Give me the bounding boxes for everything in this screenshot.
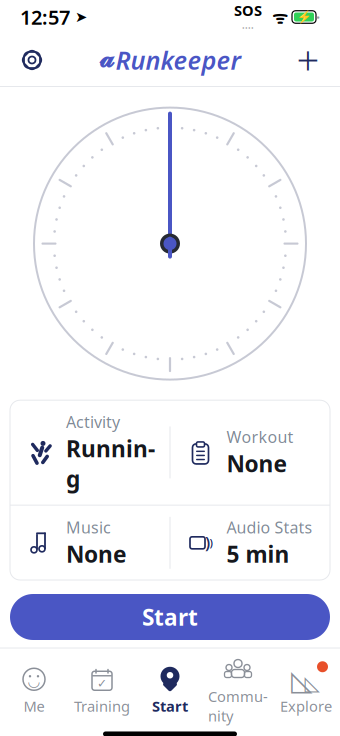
staticText: Workout [226, 426, 293, 447]
staticText: Community [208, 686, 268, 725]
staticText: None [66, 539, 127, 569]
staticText: Me [23, 696, 44, 716]
button[interactable]: ◺ [272, 658, 340, 722]
staticText: Start [142, 602, 198, 632]
staticText: ◺ [291, 664, 313, 696]
staticText: Training [74, 696, 130, 716]
button[interactable]: Workout [170, 415, 330, 489]
staticText: 5 min [226, 539, 289, 569]
button[interactable]: Add activity [286, 38, 330, 82]
staticText: Start [152, 696, 188, 716]
button[interactable]: ✓ [68, 658, 136, 722]
button[interactable]: ) [170, 506, 330, 580]
staticText: ➤ [70, 9, 87, 25]
staticText: ◺ [304, 672, 319, 695]
staticText: Activity [66, 411, 120, 432]
staticText: ✓ [97, 676, 107, 690]
staticText: ◡ [27, 673, 40, 689]
staticText: ⚡ [296, 10, 311, 24]
staticText: Audio Stats [226, 517, 312, 538]
staticText: 𝓪 [99, 48, 114, 72]
staticText: 12:57 [20, 4, 70, 30]
staticText: SOS [234, 1, 262, 20]
staticText: ᯤ [262, 5, 288, 28]
button[interactable]: Start [136, 658, 204, 722]
button[interactable]: Activity [10, 400, 169, 505]
staticText: Running [66, 433, 155, 494]
button[interactable]: Community [204, 648, 272, 731]
staticText: + [296, 33, 319, 86]
button[interactable]: Settings [10, 38, 54, 82]
staticText: Music [66, 517, 111, 538]
button[interactable]: Music [10, 506, 169, 580]
staticText: Runkeeper [115, 43, 240, 77]
button[interactable]: Start [10, 594, 330, 640]
staticText: Explore [280, 696, 332, 716]
staticText: ) [205, 532, 210, 553]
staticText: ) [209, 536, 212, 550]
staticText: None [226, 448, 287, 479]
staticText: ···· [242, 21, 254, 33]
button[interactable]: ◡ [0, 658, 68, 722]
staticText: · [316, 7, 320, 27]
